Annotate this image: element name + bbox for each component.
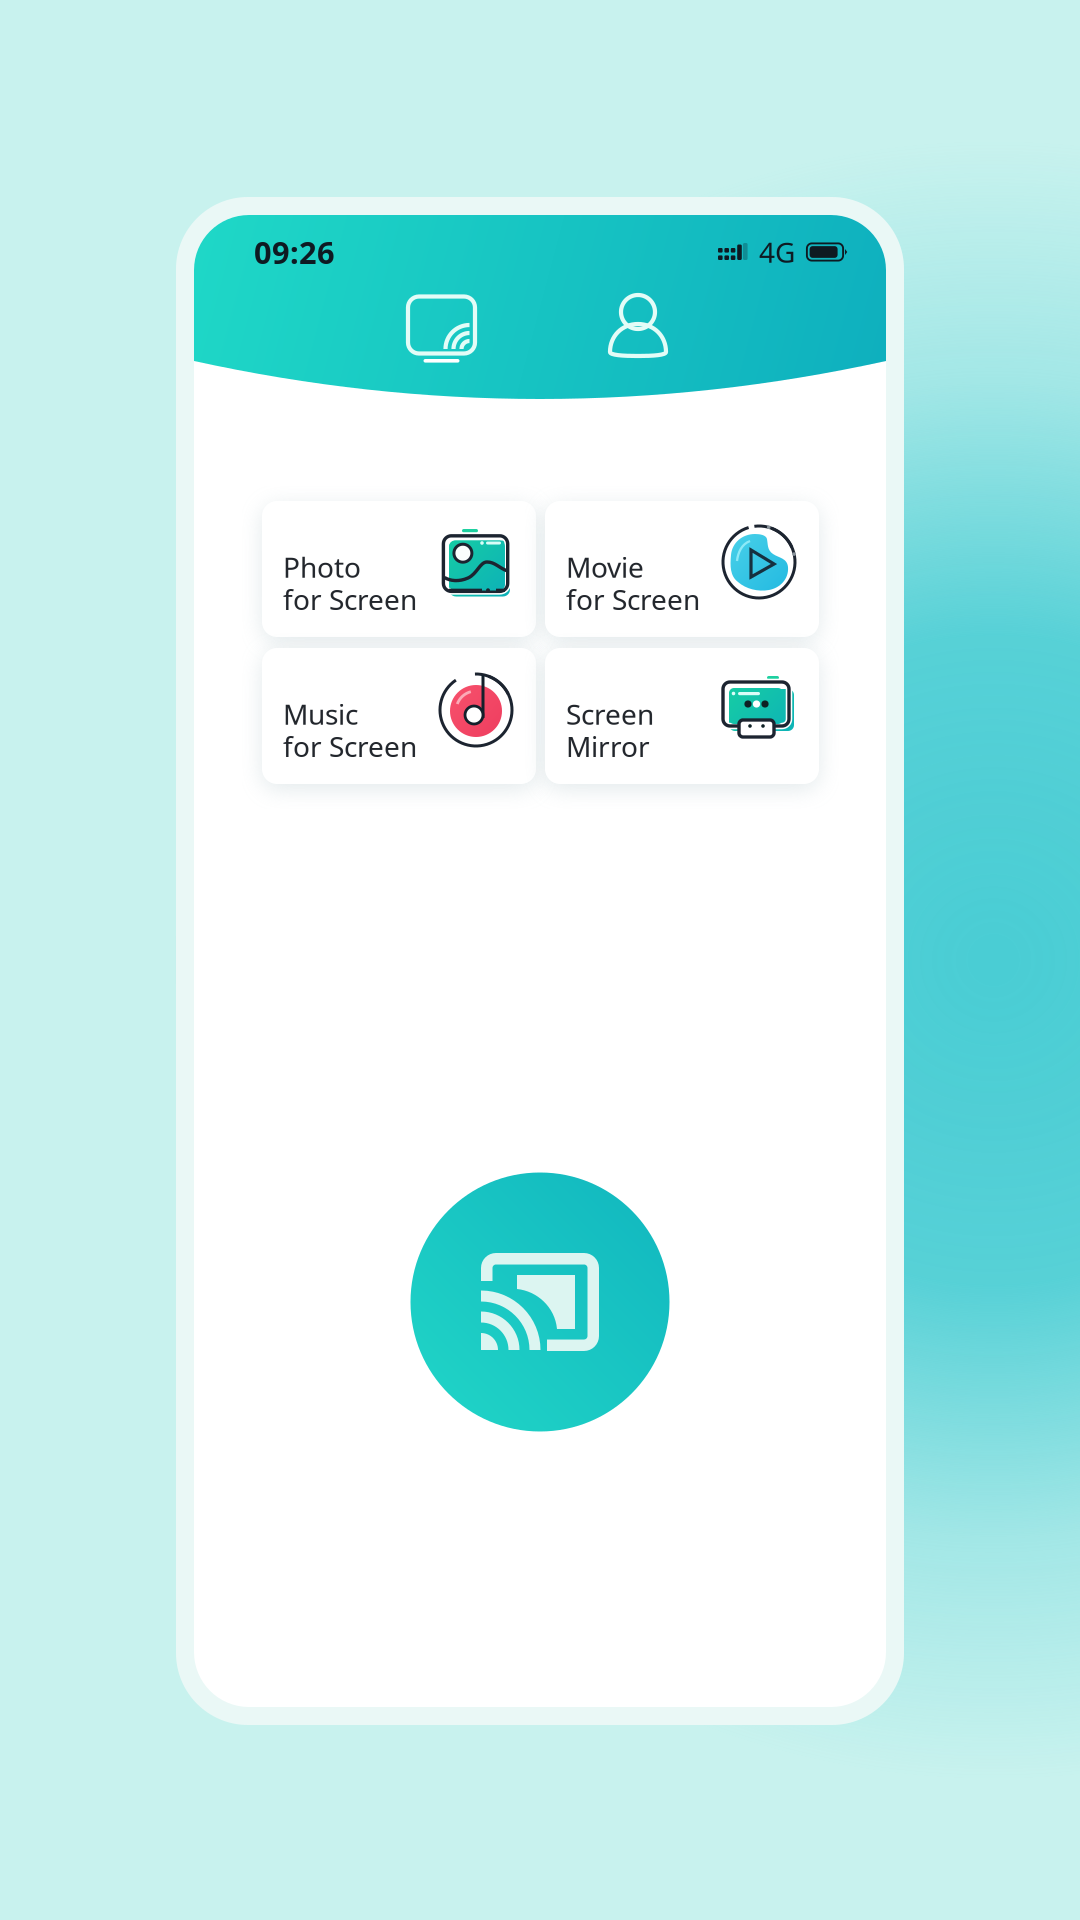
staticText: for Screen bbox=[566, 580, 700, 618]
staticText: Mirror bbox=[566, 727, 650, 765]
button[interactable]: Start casting bbox=[410, 1172, 669, 1431]
staticText: Screen bbox=[566, 695, 654, 732]
button[interactable]: Profile bbox=[583, 285, 693, 373]
staticText: for Screen bbox=[283, 580, 417, 618]
staticText: Movie bbox=[566, 548, 644, 585]
button[interactable]: Music bbox=[262, 648, 536, 784]
button[interactable]: Screen mirroring bbox=[386, 288, 496, 376]
staticText: 09:26 bbox=[254, 232, 335, 272]
staticText: 4G bbox=[759, 233, 795, 271]
staticText: Music bbox=[283, 695, 358, 732]
staticText: Photo bbox=[283, 548, 361, 585]
button[interactable]: Screen bbox=[545, 648, 819, 784]
button[interactable]: Movie bbox=[545, 501, 819, 637]
button[interactable]: Photo bbox=[262, 501, 536, 637]
staticText: for Screen bbox=[283, 727, 417, 765]
